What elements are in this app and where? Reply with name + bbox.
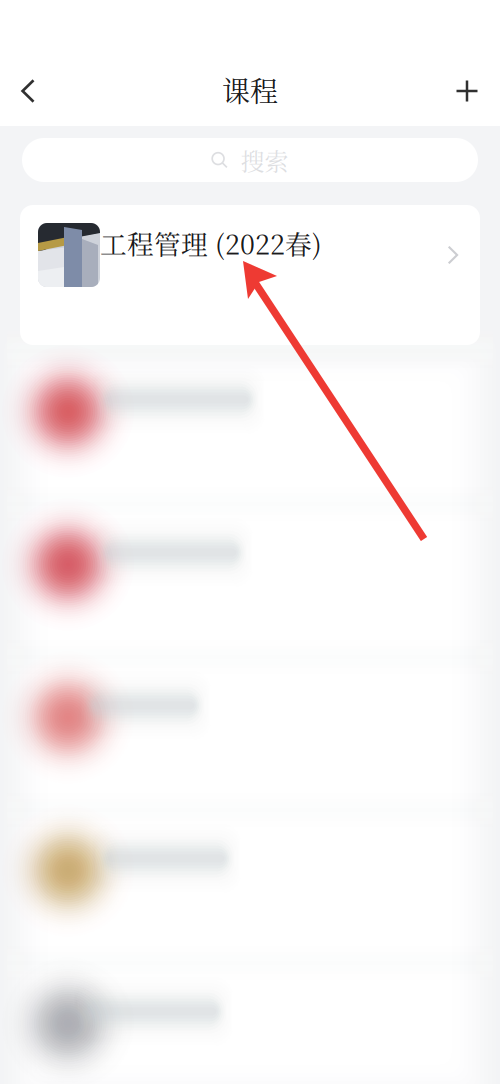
staticText: 搜索 bbox=[240, 143, 288, 177]
button[interactable]: Course bbox=[0, 510, 500, 663]
button[interactable]: Search bbox=[22, 138, 478, 182]
button[interactable]: Add bbox=[440, 64, 494, 118]
button[interactable]: 工程管理 (2022春) bbox=[20, 205, 480, 345]
staticText: 工程管理 (2022春) bbox=[100, 224, 322, 262]
staticText: 课程 bbox=[222, 70, 278, 110]
button[interactable]: Course bbox=[0, 969, 500, 1084]
button[interactable]: Course bbox=[0, 663, 500, 816]
button[interactable]: Back bbox=[1, 64, 55, 118]
button[interactable]: Course bbox=[0, 816, 500, 969]
button[interactable]: Course bbox=[0, 357, 500, 510]
